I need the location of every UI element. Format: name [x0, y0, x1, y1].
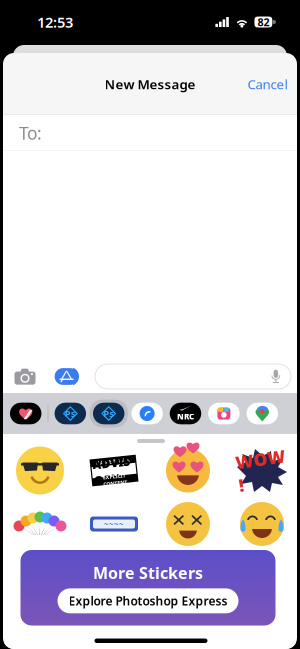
staticText: 12:53 — [37, 12, 73, 32]
button[interactable]: Photoshop — [51, 399, 89, 427]
button[interactable]: App Store — [50, 359, 83, 393]
staticText: EXPLICIT CONTENT — [102, 473, 126, 487]
button[interactable]: Dizzy face sticker — [151, 498, 225, 550]
button[interactable]: Dictate — [265, 364, 287, 388]
button[interactable]: Wow sticker — [225, 443, 299, 498]
button[interactable]: Photoshop Express — [89, 399, 128, 427]
button[interactable]: Camera — [8, 359, 42, 393]
button[interactable]: Sunglasses sticker — [3, 443, 77, 498]
button[interactable]: Maps — [243, 399, 281, 427]
staticText: NRC — [177, 411, 194, 422]
staticText: More Stickers — [93, 562, 203, 583]
staticText: ~~~~ — [104, 519, 124, 529]
button[interactable]: Happy birthday balloons sticker — [3, 498, 77, 550]
staticText: Explore Photoshop Express — [68, 593, 227, 609]
button[interactable]: Laughing sticker — [225, 498, 299, 550]
button[interactable]: Cancel — [238, 68, 296, 100]
staticText: New Message — [104, 75, 195, 93]
button[interactable]: Health stickers — [6, 399, 45, 427]
staticText: ADVISORY — [93, 455, 135, 486]
staticText: To: — [19, 121, 42, 144]
staticText: 82 — [257, 15, 269, 29]
staticText: P A R E N T A L — [97, 458, 131, 465]
staticText: Ps — [65, 407, 76, 420]
button[interactable]: Banner sticker — [77, 498, 151, 550]
button[interactable]: More Stickers — [23, 550, 278, 625]
button[interactable]: Heart eyes sticker — [151, 443, 225, 498]
staticText: Cancel — [247, 75, 287, 93]
button[interactable]: Parental advisory sticker — [77, 443, 151, 498]
staticText: Ps — [103, 407, 114, 420]
button[interactable]: Photos — [205, 399, 243, 427]
staticText: WOW! — [237, 447, 287, 493]
button[interactable]: Shazam — [128, 399, 166, 427]
button[interactable]: Nike Run Club — [166, 399, 205, 427]
